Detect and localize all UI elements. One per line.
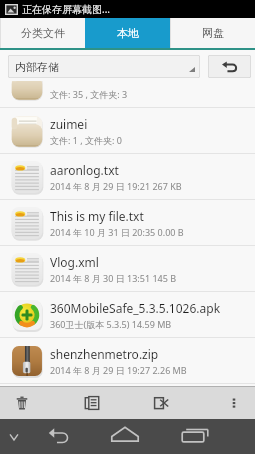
button[interactable]: Vlog.xml [0,246,255,291]
button[interactable]: Copy [75,387,109,419]
staticText: 网盘 [202,26,224,40]
button[interactable]: Up one level [208,55,251,78]
staticText: 2014 年 8 月 29 日 19:27 2.26 MB [50,364,187,376]
staticText: 正在保存屏幕截图... [22,2,111,16]
staticText: 本地 [117,26,139,40]
button[interactable]: zuimei [0,108,255,153]
button[interactable]: Recent apps [175,419,215,454]
button[interactable]: Home [105,419,145,454]
button[interactable]: 本地 [85,18,170,48]
staticText: zuimei [50,116,88,132]
button[interactable]: Move [144,387,178,419]
staticText: 2014 年 8 月 30 日 13:51 145 B [50,272,177,284]
staticText: 文件: 35 , 文件夹: 3 [50,88,128,100]
button[interactable]: shenzhenmetro.zip [0,338,255,383]
button[interactable]: 文件: 35 , 文件夹: 3 [0,81,255,107]
button[interactable]: Back [42,419,76,454]
button[interactable]: More options [217,387,251,419]
staticText: This is my file.txt [50,208,144,224]
button[interactable]: Hide navigation [4,419,24,454]
staticText: 内部存储 [15,60,59,74]
staticText: 2014 年 10 月 31 日 20:35 0.00 B [50,226,184,238]
staticText: 360卫士(版本 5.3.5) 14.59 MB [50,318,172,330]
button[interactable]: 网盘 [170,18,255,48]
button[interactable]: This is my file.txt [0,200,255,245]
staticText: 文件: 1 , 文件夹: 0 [50,134,122,146]
staticText: 360MobileSafe_5.3.5.1026.apk [50,300,221,316]
staticText: shenzhenmetro.zip [50,346,159,362]
button[interactable]: aaronlog.txt [0,154,255,199]
staticText: 分类文件 [21,26,65,40]
button[interactable]: 分类文件 [0,18,85,48]
staticText: 2014 年 8 月 29 日 19:21 267 KB [50,180,182,192]
staticText: Vlog.xml [50,254,99,270]
staticText: aaronlog.txt [50,162,119,178]
button[interactable]: 内部存储 [8,55,200,78]
button[interactable]: 360MobileSafe_5.3.5.1026.apk [0,292,255,337]
button[interactable]: Delete [5,387,39,419]
